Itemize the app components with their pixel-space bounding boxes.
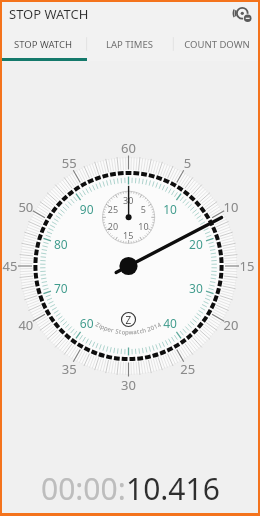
staticText: STOP WATCH: [9, 5, 89, 23]
staticText: 10.416: [126, 468, 220, 509]
button[interactable]: STOP WATCH: [0, 27, 86, 61]
button[interactable]: Mute sound: [234, 5, 252, 23]
staticText: COUNT DOWN: [184, 38, 250, 51]
button[interactable]: LAP TIMES: [86, 27, 173, 61]
staticText: STOP WATCH: [14, 38, 72, 51]
staticText: LAP TIMES: [106, 38, 153, 51]
staticText: 00:00:: [41, 468, 126, 509]
button[interactable]: COUNT DOWN: [173, 27, 260, 61]
